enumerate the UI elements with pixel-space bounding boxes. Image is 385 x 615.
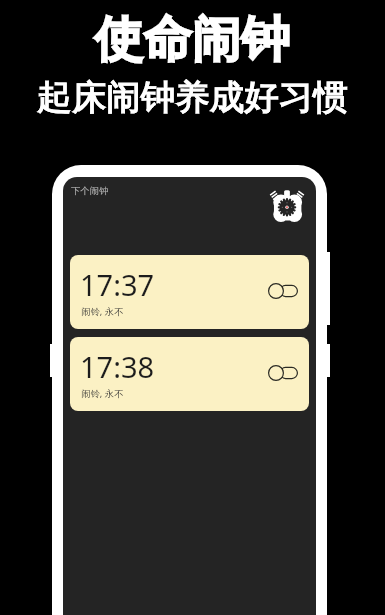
button[interactable]: Toggle alarm bbox=[268, 365, 298, 381]
staticText: 闹铃, 永不 bbox=[81, 305, 124, 318]
staticText: 17:38 bbox=[80, 347, 155, 386]
button[interactable]: 17:38 bbox=[70, 337, 309, 411]
staticText: 起床闹钟养成好习惯 bbox=[37, 76, 348, 119]
button[interactable]: Alarm clock bbox=[270, 190, 304, 221]
staticText: 使命闹钟 bbox=[95, 8, 291, 70]
staticText: 下个闹钟 bbox=[71, 185, 109, 197]
staticText: 使命闹钟 bbox=[95, 8, 291, 70]
button[interactable]: Toggle alarm bbox=[268, 283, 298, 299]
staticText: 起床闹钟养成好习惯 bbox=[37, 76, 348, 119]
staticText: 17:37 bbox=[80, 265, 155, 304]
staticText: 闹铃, 永不 bbox=[81, 387, 124, 400]
button[interactable]: 17:37 bbox=[70, 255, 309, 329]
